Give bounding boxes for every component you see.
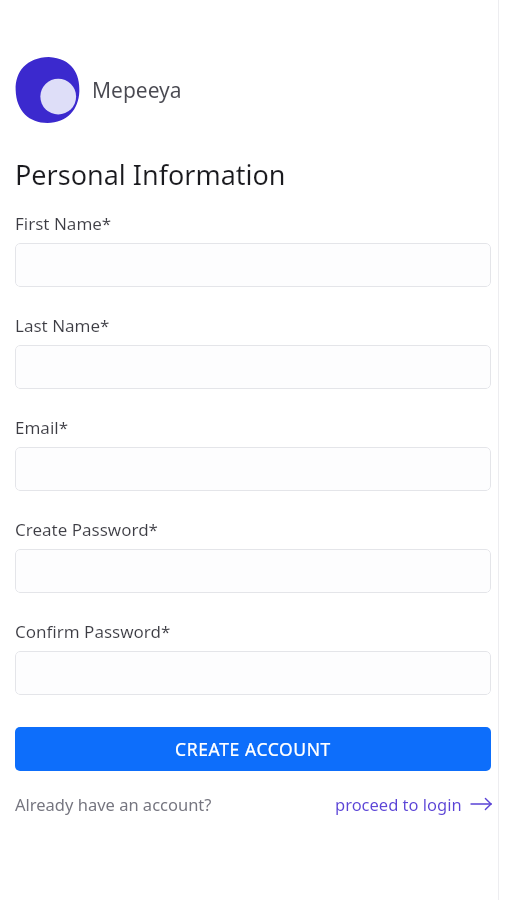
- button[interactable]: Confirm Password*: [15, 651, 491, 695]
- button[interactable]: Last Name*: [15, 345, 491, 389]
- button[interactable]: proceed to login: [335, 793, 491, 815]
- staticText: Create Password*: [15, 518, 158, 541]
- button[interactable]: Email*: [15, 447, 491, 491]
- button[interactable]: First Name*: [15, 243, 491, 287]
- button[interactable]: CREATE ACCOUNT: [15, 727, 491, 771]
- staticText: proceed to login: [335, 793, 462, 815]
- button[interactable]: Create Password*: [15, 549, 491, 593]
- staticText: Personal Information: [15, 156, 286, 193]
- staticText: Mepeeya: [92, 76, 182, 105]
- staticText: Confirm Password*: [15, 620, 171, 643]
- staticText: First Name*: [15, 212, 112, 235]
- staticText: Last Name*: [15, 314, 110, 337]
- button[interactable]: Mepeeya: [15, 57, 182, 123]
- staticText: Email*: [15, 416, 69, 439]
- staticText: Already have an account?: [15, 793, 212, 815]
- staticText: CREATE ACCOUNT: [175, 737, 331, 761]
